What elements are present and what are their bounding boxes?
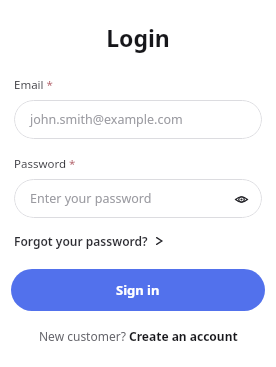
staticText: Email * bbox=[14, 77, 53, 93]
button[interactable]: New customer? Create an account bbox=[35, 326, 242, 346]
button[interactable]: john.smith@example.com bbox=[14, 100, 262, 139]
button[interactable]: Sign in bbox=[11, 269, 265, 311]
staticText: New customer? Create an account bbox=[39, 328, 238, 344]
staticText: Password * bbox=[14, 156, 76, 172]
staticText: Sign in bbox=[116, 281, 160, 299]
button[interactable]: Show password bbox=[230, 188, 252, 210]
staticText: Forgot your password? bbox=[14, 233, 148, 249]
button[interactable]: Enter your password bbox=[14, 179, 262, 218]
button[interactable]: Forgot your password? bbox=[14, 231, 164, 251]
staticText: john.smith@example.com bbox=[30, 111, 183, 128]
staticText: Enter your password bbox=[30, 190, 152, 207]
staticText: Login bbox=[0, 22, 276, 53]
